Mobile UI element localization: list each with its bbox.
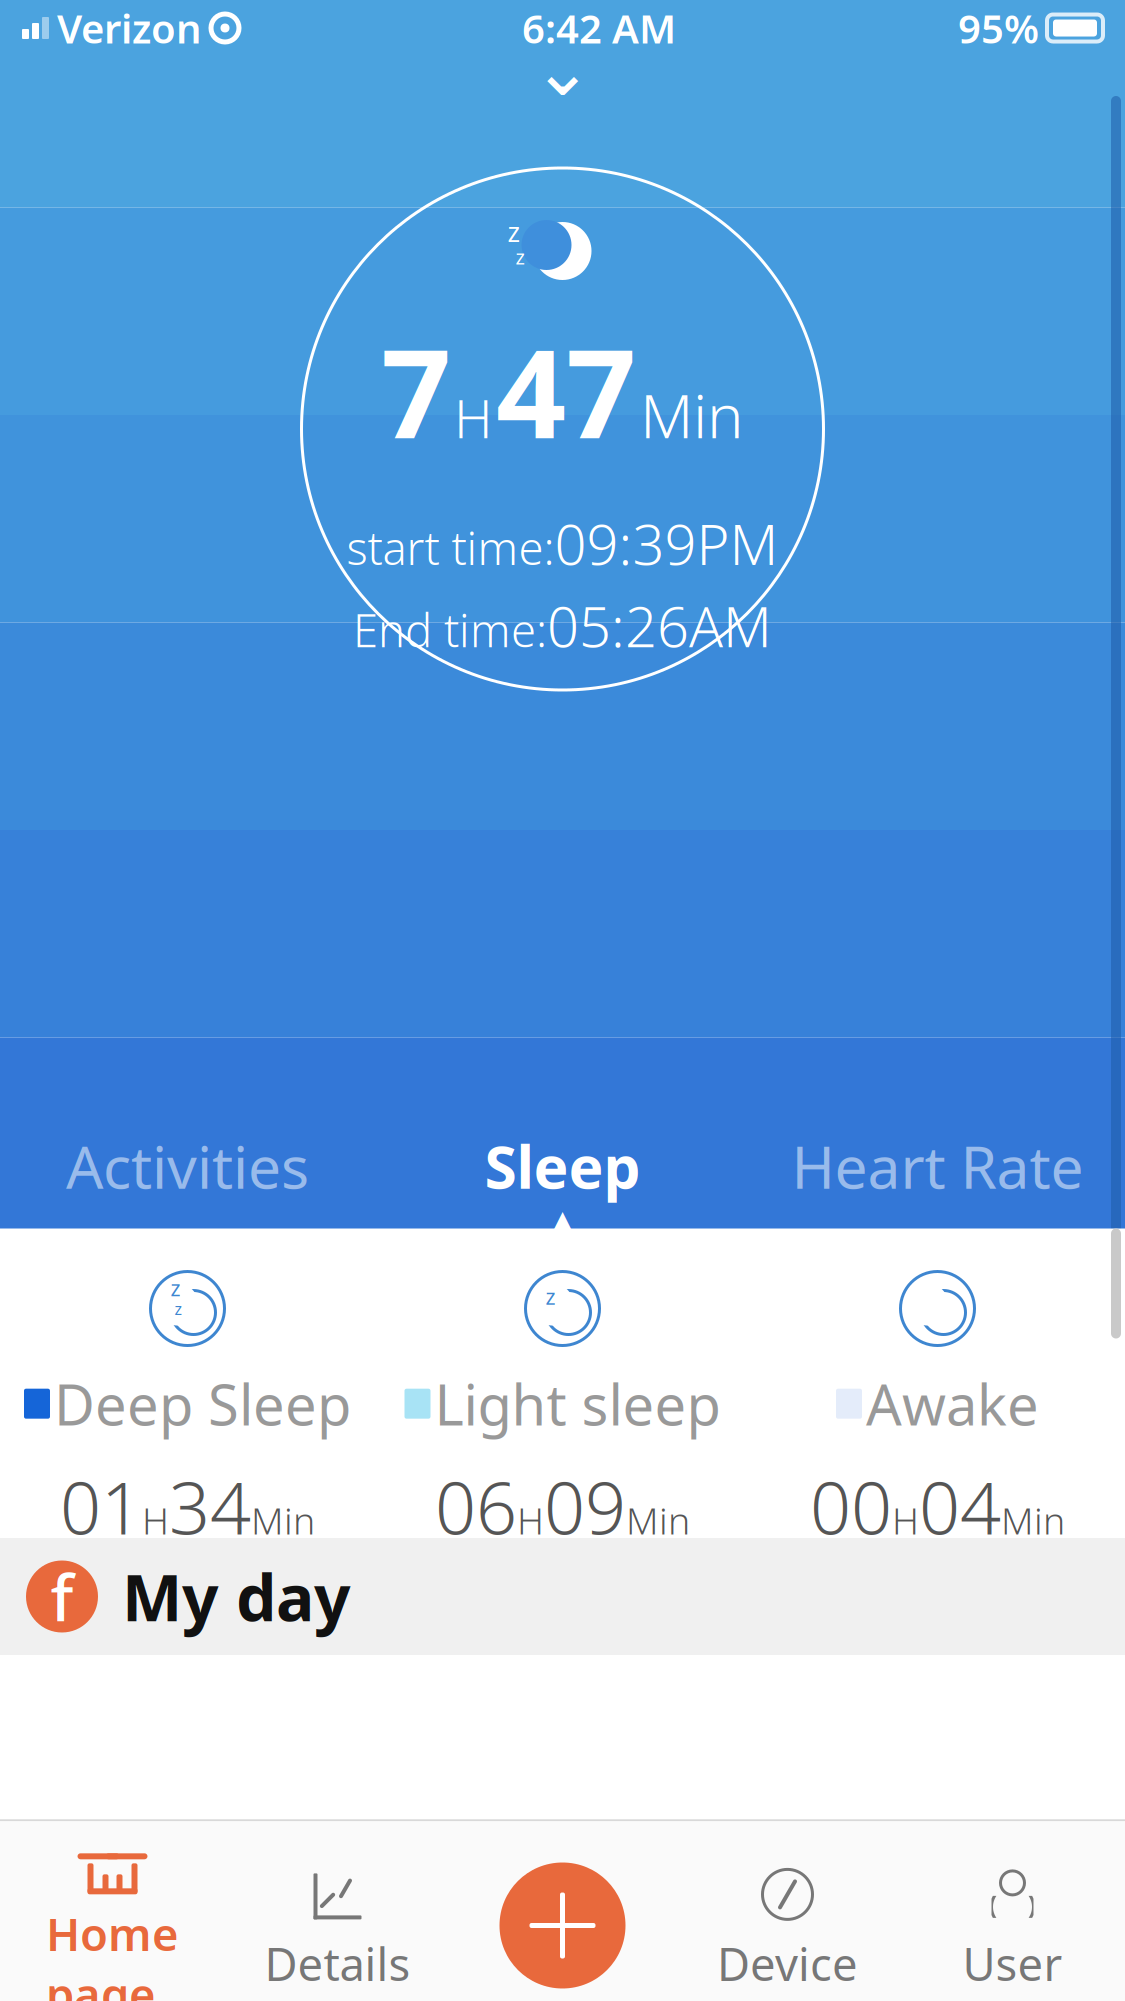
button[interactable]: Heart Rate <box>750 1113 1125 1219</box>
staticText: z <box>174 1298 182 1319</box>
staticText: 04 <box>919 1459 1001 1554</box>
button[interactable]: Home page <box>0 1821 225 2001</box>
staticText: 05:26AM <box>547 588 772 663</box>
staticText: H <box>892 1495 919 1545</box>
button[interactable]: Device <box>675 1851 900 2001</box>
staticText: Light sleep <box>434 1366 720 1441</box>
staticText: ⌄ <box>532 29 592 111</box>
staticText: User <box>962 1933 1062 1994</box>
staticText: My day <box>122 1554 351 1639</box>
staticText: Min <box>1001 1495 1065 1545</box>
staticText: Min <box>640 374 744 455</box>
staticText: 09 <box>544 1459 626 1554</box>
staticText: Awake <box>866 1366 1039 1441</box>
staticText: H <box>142 1495 169 1545</box>
staticText: 95% <box>958 1 1039 54</box>
button[interactable]: User <box>900 1851 1125 2001</box>
staticText: Sleep <box>484 1127 640 1205</box>
staticText: H <box>517 1495 544 1545</box>
staticText: Home page <box>46 1903 179 2001</box>
staticText: f <box>50 1554 73 1639</box>
staticText: Deep Sleep <box>54 1366 351 1441</box>
staticText: z <box>545 1282 555 1311</box>
staticText: Min <box>251 1495 315 1545</box>
button[interactable]: Activities <box>0 1113 375 1219</box>
staticText: Details <box>264 1933 410 1994</box>
staticText: 6:42 AM <box>522 1 676 54</box>
staticText: Verizon <box>57 1 202 54</box>
staticText: start time: <box>346 517 554 577</box>
staticText: 06 <box>435 1459 517 1554</box>
staticText: Heart Rate <box>791 1127 1083 1205</box>
staticText: ▲ <box>542 1197 583 1258</box>
staticText: 09:39PM <box>554 506 778 580</box>
button[interactable]: Add <box>499 1862 625 1988</box>
staticText: H <box>454 382 493 453</box>
staticText: End time: <box>353 600 547 660</box>
staticText: 00 <box>810 1459 892 1554</box>
staticText: z <box>515 243 524 270</box>
staticText: 34 <box>169 1459 251 1554</box>
button[interactable]: Details <box>225 1851 450 2001</box>
staticText: 01 <box>60 1459 142 1554</box>
staticText: Activities <box>66 1127 309 1205</box>
staticText: z <box>170 1274 180 1302</box>
staticText: 47 <box>496 309 636 472</box>
staticText: Min <box>626 1495 690 1545</box>
button[interactable]: f <box>0 1538 1125 1655</box>
button[interactable]: Sleep <box>375 1113 750 1219</box>
staticText: 7 <box>381 309 451 472</box>
staticText: z <box>507 214 520 249</box>
staticText: Device <box>717 1933 858 1994</box>
